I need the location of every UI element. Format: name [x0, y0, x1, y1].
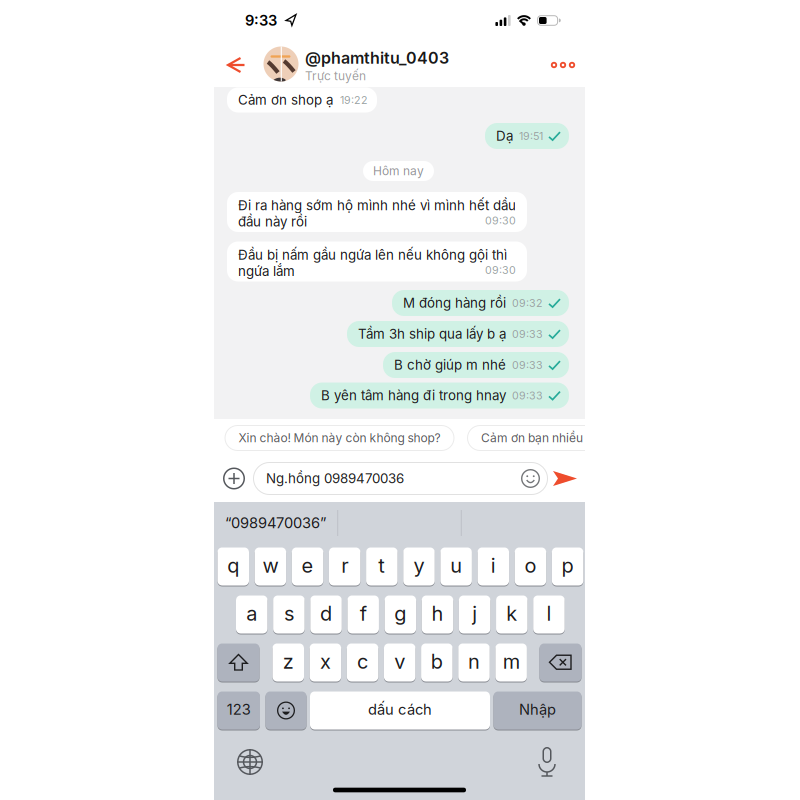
staticText: l: [546, 602, 551, 625]
button[interactable]: m: [495, 643, 527, 682]
button[interactable]: e: [292, 547, 323, 586]
staticText: đầu này rồi: [238, 214, 307, 229]
staticText: ngứa lắm: [238, 263, 295, 279]
staticText: r: [341, 554, 348, 577]
staticText: Dạ: [496, 128, 513, 144]
staticText: q: [227, 554, 239, 577]
button[interactable]: t: [366, 547, 398, 586]
button[interactable]: s: [273, 595, 305, 634]
button[interactable]: l: [533, 595, 565, 634]
button[interactable]: r: [329, 547, 360, 586]
button[interactable]: g: [385, 595, 416, 634]
staticText: B chờ giúp m nhé: [394, 357, 506, 373]
button[interactable]: k: [496, 595, 528, 634]
button[interactable]: p: [552, 547, 583, 586]
button[interactable]: Nhập: [493, 691, 581, 730]
staticText: Hôm nay: [373, 164, 424, 178]
staticText: v: [394, 650, 405, 673]
staticText: t: [378, 554, 385, 577]
staticText: b: [431, 650, 443, 673]
button[interactable]: c: [347, 643, 378, 682]
button[interactable]: Shift: [217, 643, 259, 682]
staticText: o: [524, 554, 536, 577]
button[interactable]: Dictation: [536, 747, 558, 775]
button[interactable]: q: [217, 547, 249, 586]
staticText: a: [246, 602, 257, 625]
button[interactable]: Xin chào! Món này còn không shop?: [224, 425, 454, 451]
staticText: “0989470036”: [225, 514, 326, 532]
button[interactable]: b: [421, 643, 453, 682]
staticText: w: [262, 554, 278, 577]
button[interactable]: o: [515, 547, 546, 586]
staticText: 123: [227, 701, 251, 718]
staticText: Đầu bị nấm gầu ngứa lên nếu không gội th…: [238, 247, 507, 263]
staticText: @phamthitu_0403: [305, 49, 449, 67]
staticText: y: [413, 554, 424, 577]
button[interactable]: Back: [221, 50, 251, 80]
button[interactable]: Add attachment: [223, 467, 245, 489]
button[interactable]: Next keyboard: [237, 749, 263, 775]
button[interactable]: “0989470036”: [214, 505, 337, 541]
button[interactable]: Delete: [539, 643, 581, 682]
button[interactable]: u: [440, 547, 472, 586]
staticText: j: [472, 602, 477, 625]
button[interactable]: 123: [217, 691, 260, 730]
staticText: e: [302, 554, 314, 577]
staticText: Cảm ơn bạn nhiều r: [481, 431, 591, 445]
staticText: x: [320, 650, 331, 673]
staticText: dấu cách: [368, 701, 432, 718]
staticText: 19:22: [340, 94, 368, 106]
staticText: n: [468, 650, 480, 673]
staticText: Trực tuyến: [305, 69, 366, 83]
button[interactable]: Cảm ơn bạn nhiều r: [467, 425, 627, 451]
staticText: 09:33: [512, 359, 543, 371]
button[interactable]: More options: [546, 53, 580, 77]
button[interactable]: h: [422, 595, 453, 634]
button[interactable]: z: [272, 643, 304, 682]
staticText: s: [284, 602, 294, 625]
staticText: h: [431, 602, 443, 625]
staticText: 09:30: [485, 264, 516, 276]
staticText: g: [394, 602, 406, 625]
staticText: B yên tâm hàng đi trong hnay: [321, 388, 506, 403]
staticText: c: [357, 650, 368, 673]
staticText: M đóng hàng rồi: [403, 295, 506, 311]
button[interactable]: y: [403, 547, 435, 586]
button[interactable]: d: [310, 595, 342, 634]
button[interactable]: a: [236, 595, 267, 634]
button[interactable]: n: [458, 643, 490, 682]
staticText: 09:33: [512, 389, 543, 402]
button[interactable]: j: [459, 595, 490, 634]
staticText: 09:30: [485, 214, 516, 227]
button[interactable]: i: [478, 547, 509, 586]
button[interactable]: Emoji keyboard: [265, 691, 306, 730]
staticText: d: [320, 602, 332, 625]
button[interactable]: f: [347, 595, 379, 634]
staticText: Cảm ơn shop ạ: [238, 92, 333, 108]
staticText: Xin chào! Món này còn không shop?: [238, 431, 440, 445]
button[interactable]: Send: [553, 468, 577, 489]
staticText: Tầm 3h ship qua lấy b ạ: [358, 326, 506, 342]
button[interactable]: Emoji: [521, 469, 540, 488]
staticText: m: [503, 650, 520, 673]
button[interactable]: w: [255, 547, 286, 586]
staticText: i: [491, 554, 496, 577]
staticText: Nhập: [519, 701, 556, 718]
button[interactable]: x: [310, 643, 341, 682]
staticText: 19:51: [519, 130, 543, 142]
staticText: u: [450, 554, 462, 577]
button[interactable]: dấu cách: [310, 691, 490, 730]
staticText: k: [506, 602, 517, 625]
staticText: p: [562, 554, 574, 577]
staticText: Đi ra hàng sớm hộ mình nhé vì mình hết d…: [238, 197, 516, 213]
staticText: z: [283, 650, 294, 673]
button[interactable]: v: [384, 643, 415, 682]
staticText: 9:33: [245, 12, 277, 29]
staticText: Ng.hồng 0989470036: [266, 471, 404, 486]
staticText: f: [360, 602, 367, 625]
staticText: 09:33: [512, 328, 543, 340]
staticText: 09:32: [512, 297, 543, 309]
